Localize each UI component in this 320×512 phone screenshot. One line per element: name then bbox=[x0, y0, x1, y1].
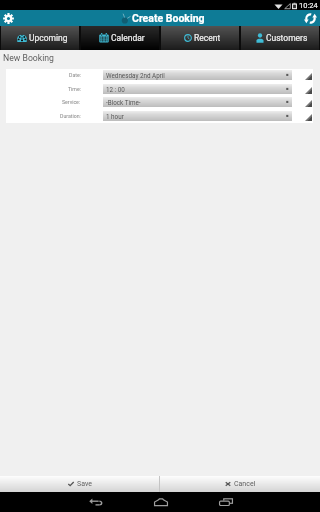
button[interactable]: Recent bbox=[160, 26, 240, 50]
staticText: Time: bbox=[68, 86, 81, 92]
button[interactable]: Upcoming bbox=[0, 26, 80, 50]
button[interactable]: Calendar bbox=[80, 26, 160, 50]
button[interactable]: -Block Time- bbox=[103, 97, 292, 107]
staticText: Create Booking bbox=[132, 12, 205, 24]
button[interactable]: Wednesday 2nd April bbox=[103, 70, 292, 80]
staticText: 10:24 bbox=[299, 1, 318, 10]
button[interactable]: Back bbox=[63, 492, 128, 512]
staticText: Calendar bbox=[111, 33, 145, 43]
button[interactable]: Recent apps bbox=[193, 492, 258, 512]
staticText: Recent bbox=[194, 33, 221, 43]
staticText: Date: bbox=[69, 72, 81, 78]
button[interactable]: 12 : 00 bbox=[103, 84, 292, 94]
staticText: -Block Time- bbox=[106, 99, 141, 106]
button[interactable]: Home bbox=[128, 492, 193, 512]
staticText: Save bbox=[77, 480, 92, 488]
staticText: Customers bbox=[266, 33, 308, 43]
staticText: 1 hour bbox=[106, 113, 124, 120]
staticText: Service: bbox=[62, 99, 81, 105]
staticText: Cancel bbox=[234, 480, 256, 488]
button[interactable]: Customers bbox=[240, 26, 320, 50]
staticText: 12 : 00 bbox=[106, 86, 125, 93]
button[interactable]: Save bbox=[0, 476, 159, 492]
staticText: Duration: bbox=[60, 113, 81, 119]
staticText: Upcoming bbox=[29, 33, 68, 43]
button[interactable]: Refresh bbox=[300, 10, 320, 26]
button[interactable]: Settings bbox=[0, 10, 16, 26]
button[interactable]: 1 hour bbox=[103, 111, 292, 121]
button[interactable]: Cancel bbox=[160, 476, 320, 492]
staticText: Wednesday 2nd April bbox=[106, 72, 165, 79]
staticText: New Booking bbox=[3, 53, 55, 63]
